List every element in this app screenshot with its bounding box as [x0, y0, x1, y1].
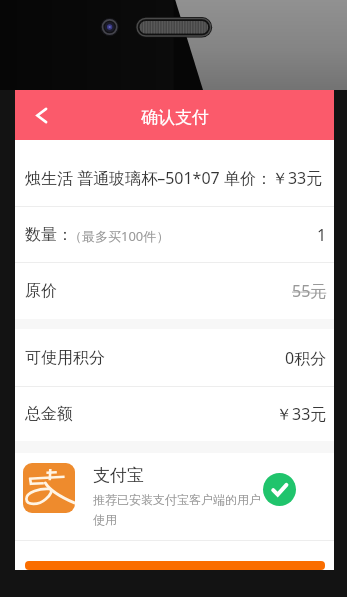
staticText: 支付宝 — [93, 465, 144, 486]
staticText: 确认支付 — [141, 107, 209, 128]
button[interactable] — [25, 561, 325, 570]
button[interactable]: 原价 — [15, 263, 334, 319]
staticText: ￥33元 — [276, 403, 327, 425]
staticText: 数量： — [25, 225, 73, 245]
button[interactable]: 支付宝 — [15, 453, 334, 540]
staticText: 1 — [317, 224, 327, 246]
button[interactable]: 返回 — [19, 93, 63, 137]
staticText: 55元 — [292, 280, 327, 302]
staticText: 总金额 — [25, 404, 73, 424]
staticText: 原价 — [25, 281, 57, 301]
other: 支付宝 — [23, 463, 75, 513]
button[interactable]: 烛生活 普通玻璃杯–501*07 单价：￥33元 — [15, 140, 334, 206]
staticText: 烛生活 普通玻璃杯–501*07 单价：￥33元 — [25, 167, 323, 189]
staticText: （最多买100件） — [69, 227, 170, 245]
button[interactable]: 可使用积分 — [15, 329, 334, 386]
staticText: 可使用积分 — [25, 348, 105, 368]
staticText: 推荐已安装支付宝客户端的用户使用 — [93, 492, 265, 527]
button[interactable]: 数量： — [15, 207, 334, 262]
staticText: 0积分 — [285, 347, 327, 369]
button[interactable]: 总金额 — [15, 387, 334, 441]
